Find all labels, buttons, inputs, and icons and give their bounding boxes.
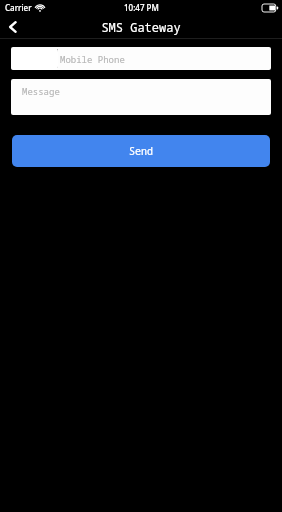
button[interactable]: Send [12,135,270,167]
button[interactable]: Mobile Phone [11,47,271,70]
staticText: Send [129,144,153,158]
staticText: Carrier [5,2,32,13]
button[interactable]: Message [11,79,271,115]
button[interactable]: Back [0,15,26,38]
staticText: 10:47 PM [124,2,159,13]
staticText: SMS Gateway [101,19,181,35]
staticText: Mobile Phone [60,53,125,65]
button[interactable]: Country code [11,48,58,70]
staticText: Message [22,85,60,97]
